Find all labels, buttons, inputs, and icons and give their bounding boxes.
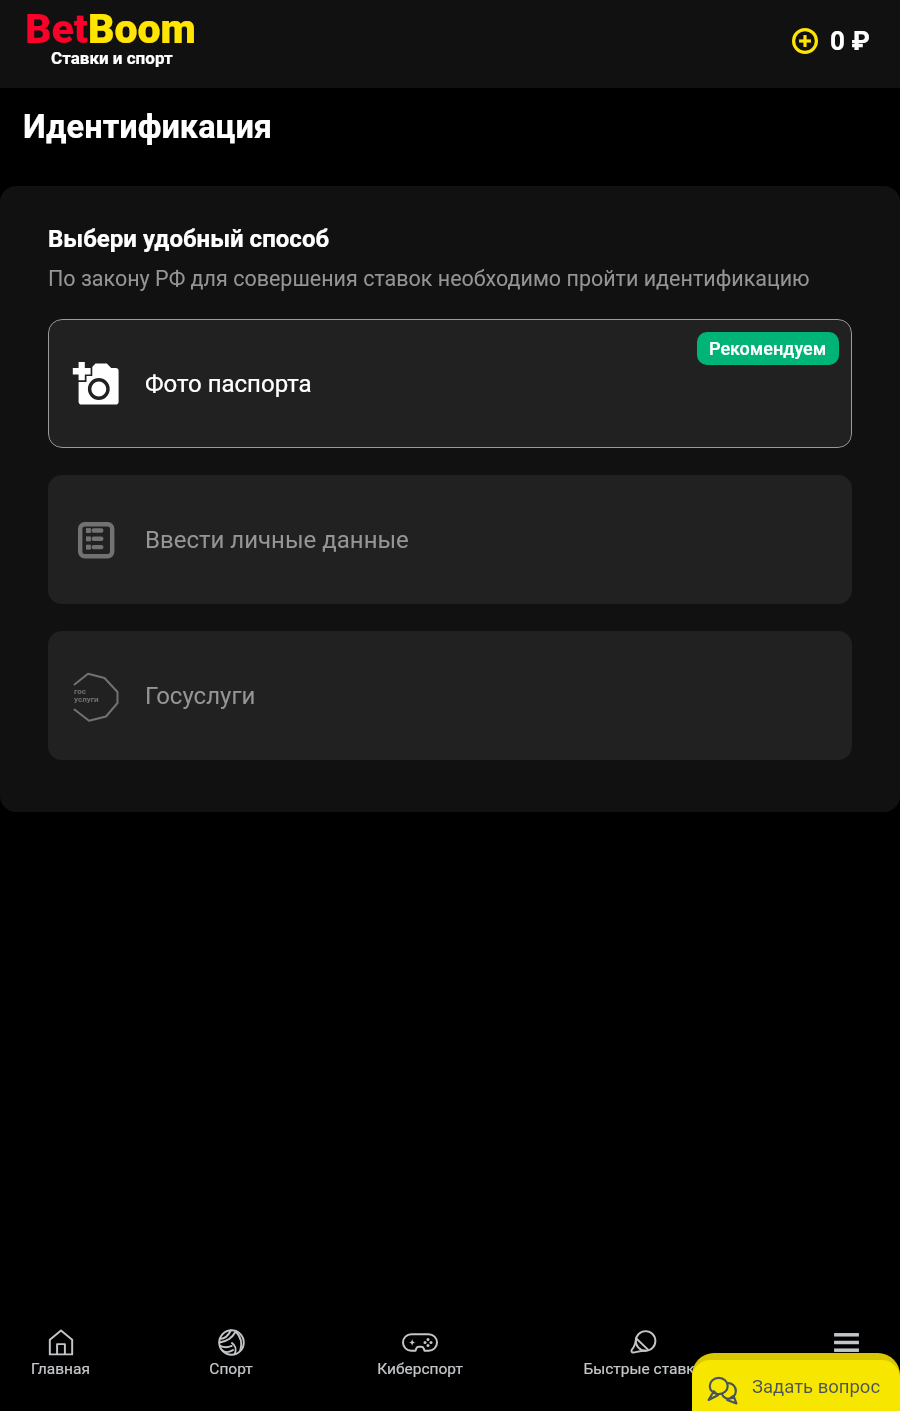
staticText: Ввести личные данные <box>145 526 409 554</box>
staticText: гос <box>74 687 86 696</box>
staticText: Спорт <box>209 1360 253 1378</box>
other: Киберспорт <box>402 1329 438 1356</box>
staticText: Киберспорт <box>377 1360 463 1378</box>
staticText: Быстрые ставки <box>583 1360 704 1378</box>
button[interactable]: Меню <box>761 1311 900 1411</box>
other: Ввести личные данные <box>73 517 119 563</box>
button[interactable]: Ввести личные данные <box>48 475 852 604</box>
button[interactable]: Задать вопрос <box>692 1353 900 1411</box>
other: Главная <box>48 1329 74 1356</box>
button[interactable]: Пополнить счёт <box>792 26 870 56</box>
button[interactable]: Фото паспорта <box>48 319 852 448</box>
staticText: Ставки и спорт <box>51 48 173 68</box>
staticText: Boom <box>88 5 196 53</box>
button[interactable]: Госуслуги <box>48 631 852 760</box>
other: Госуслуги <box>73 673 119 719</box>
staticText: Фото паспорта <box>145 370 312 398</box>
button[interactable]: Главная <box>0 1311 145 1411</box>
button[interactable]: Bet <box>25 5 196 73</box>
staticText: Идентификация <box>23 108 273 146</box>
other: Меню <box>833 1329 860 1356</box>
button[interactable]: Киберспорт <box>335 1311 505 1411</box>
staticText: Выбери удобный способ <box>48 225 330 253</box>
staticText: Госуслуги <box>145 682 256 710</box>
button[interactable]: Спорт <box>146 1311 316 1411</box>
staticText: Bet <box>25 5 88 53</box>
other: Быстрые ставки <box>630 1329 657 1356</box>
staticText: Задать вопрос <box>752 1376 881 1398</box>
staticText: услуги <box>74 695 99 704</box>
staticText: 0 ₽ <box>830 26 870 56</box>
staticText: По закону РФ для совершения ставок необх… <box>48 266 810 291</box>
other: Фото паспорта <box>73 361 119 407</box>
other: Спорт <box>218 1329 245 1356</box>
staticText: Рекомендуем <box>709 338 827 359</box>
other: Пополнить счёт <box>792 28 818 54</box>
staticText: Главная <box>31 1360 90 1378</box>
button[interactable]: Быстрые ставки <box>558 1311 728 1411</box>
button[interactable]: Рекомендуем <box>697 332 839 365</box>
